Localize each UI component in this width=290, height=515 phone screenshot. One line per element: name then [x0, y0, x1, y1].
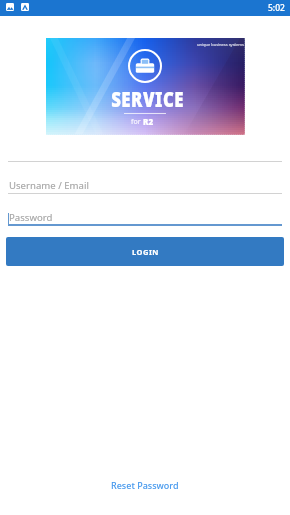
staticText: R2	[143, 116, 154, 127]
staticText: LOGIN	[132, 247, 159, 257]
staticText: Reset Password	[111, 479, 179, 491]
other: Service logo	[128, 49, 162, 83]
button[interactable]: Company / Login Page	[0, 152, 290, 166]
button[interactable]: Username / Email	[0, 177, 290, 197]
other: App notification	[21, 3, 29, 11]
staticText: unique business systems	[197, 42, 244, 47]
button[interactable]: Reset Password	[103, 476, 187, 494]
staticText: 5:02	[268, 2, 285, 14]
button[interactable]: LOGIN	[6, 237, 284, 266]
button[interactable]: Password	[0, 209, 290, 228]
staticText: SERVICE	[111, 85, 185, 114]
other: Screenshot notification	[6, 3, 14, 11]
staticText: for	[131, 117, 143, 127]
staticText: Password	[9, 211, 53, 224]
staticText: Username / Email	[9, 179, 89, 192]
